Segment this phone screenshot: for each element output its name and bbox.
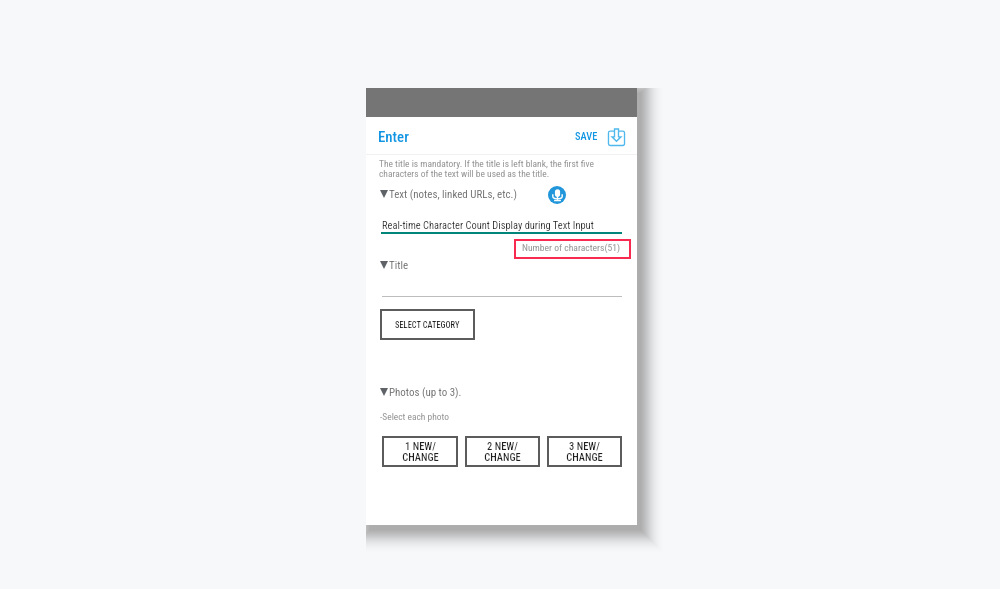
button[interactable]: SELECT CATEGORY bbox=[380, 309, 475, 340]
staticText: -Select each photo bbox=[380, 411, 449, 422]
staticText: Number of characters(51) bbox=[522, 242, 620, 253]
button[interactable]: SAVE bbox=[574, 120, 602, 142]
staticText: 2 NEW/ CHANGE bbox=[484, 440, 521, 463]
staticText: 3 NEW/ CHANGE bbox=[566, 440, 603, 463]
staticText: Title bbox=[389, 259, 409, 272]
button[interactable]: 2 NEW/ CHANGE bbox=[465, 436, 540, 467]
button[interactable]: 3 NEW/ CHANGE bbox=[547, 436, 622, 467]
staticText: 1 NEW/ CHANGE bbox=[402, 440, 439, 463]
staticText: SELECT CATEGORY bbox=[395, 320, 460, 330]
staticText: The title is mandatory. If the title is … bbox=[379, 158, 594, 179]
staticText: Real-time Character Count Display during… bbox=[382, 219, 594, 231]
staticText: Text (notes, linked URLs, etc.) bbox=[389, 188, 517, 201]
button[interactable]: Voice input bbox=[548, 186, 566, 204]
staticText: Photos (up to 3). bbox=[389, 386, 462, 399]
button[interactable]: Save bbox=[606, 127, 626, 147]
button[interactable]: 1 NEW/ CHANGE bbox=[382, 436, 458, 467]
staticText: SAVE bbox=[575, 130, 598, 142]
staticText: Enter bbox=[378, 128, 409, 145]
